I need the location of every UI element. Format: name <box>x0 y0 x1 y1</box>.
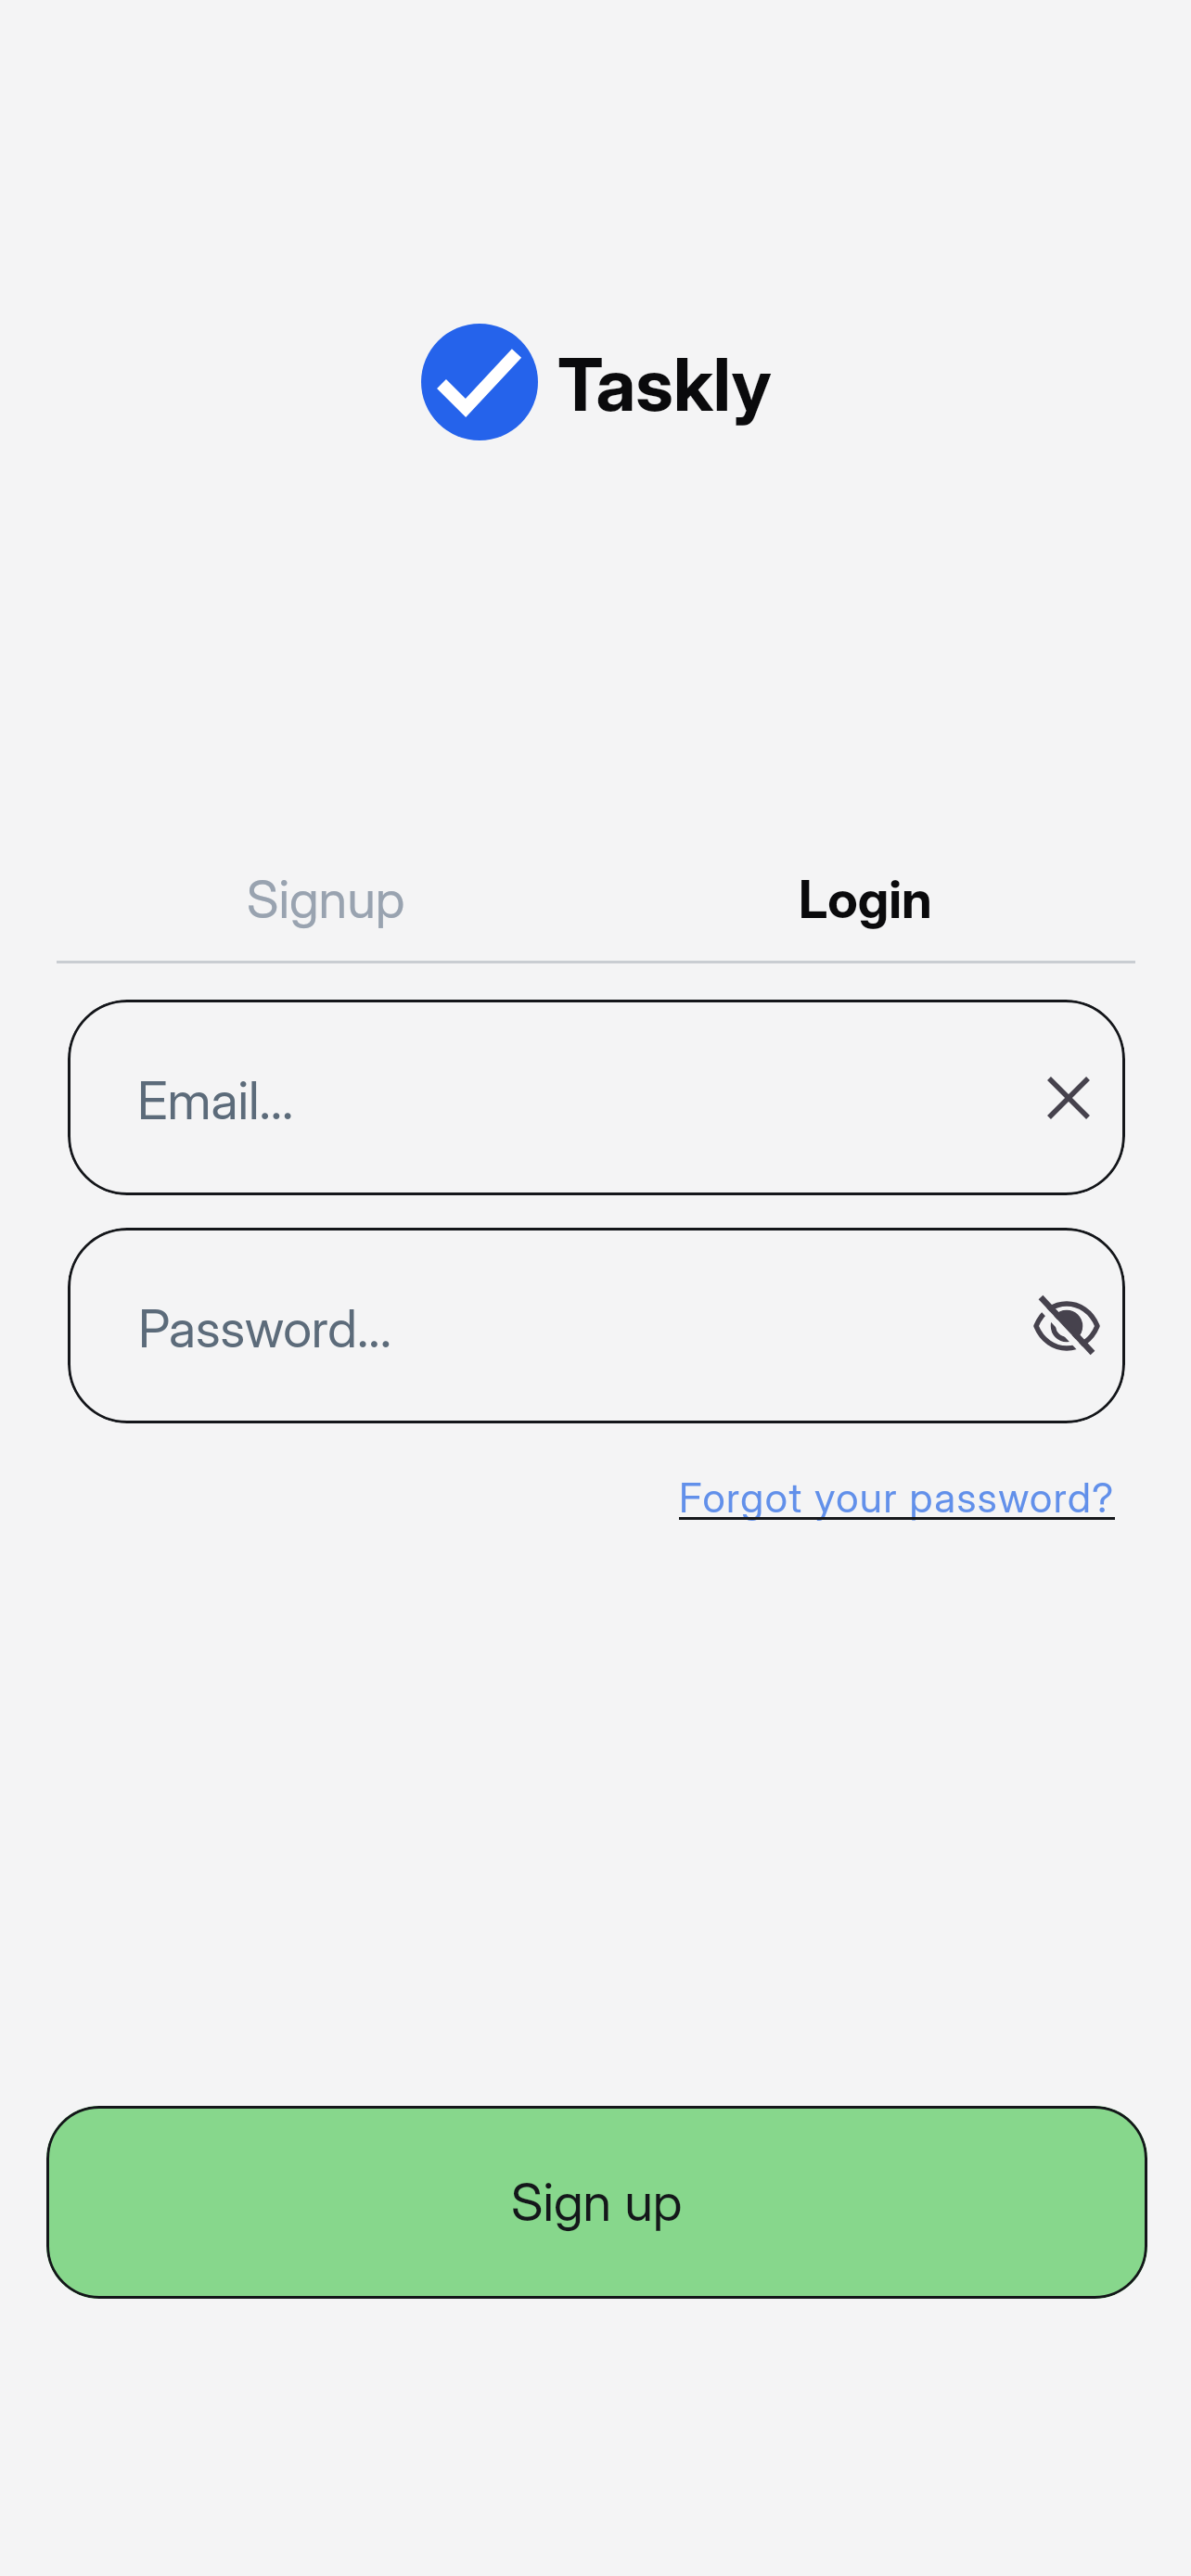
button[interactable]: Signup <box>57 858 595 941</box>
button[interactable]: Login <box>595 858 1135 941</box>
button[interactable] <box>1034 1295 1099 1357</box>
staticText: Forgot your password? <box>679 1473 1115 1522</box>
button[interactable]: Sign up <box>46 2106 1147 2299</box>
button[interactable]: Forgot your password? <box>679 1473 1115 1524</box>
staticText: Login <box>799 868 932 931</box>
staticText: Password... <box>138 1297 391 1360</box>
button[interactable]: Password... <box>68 1228 1125 1423</box>
button[interactable]: Email... <box>68 1000 1125 1195</box>
staticText: Taskly <box>557 340 772 427</box>
staticText: Sign up <box>511 2171 683 2234</box>
staticText: Signup <box>247 868 405 931</box>
staticText: Email... <box>137 1069 294 1132</box>
button[interactable] <box>1049 1078 1088 1117</box>
